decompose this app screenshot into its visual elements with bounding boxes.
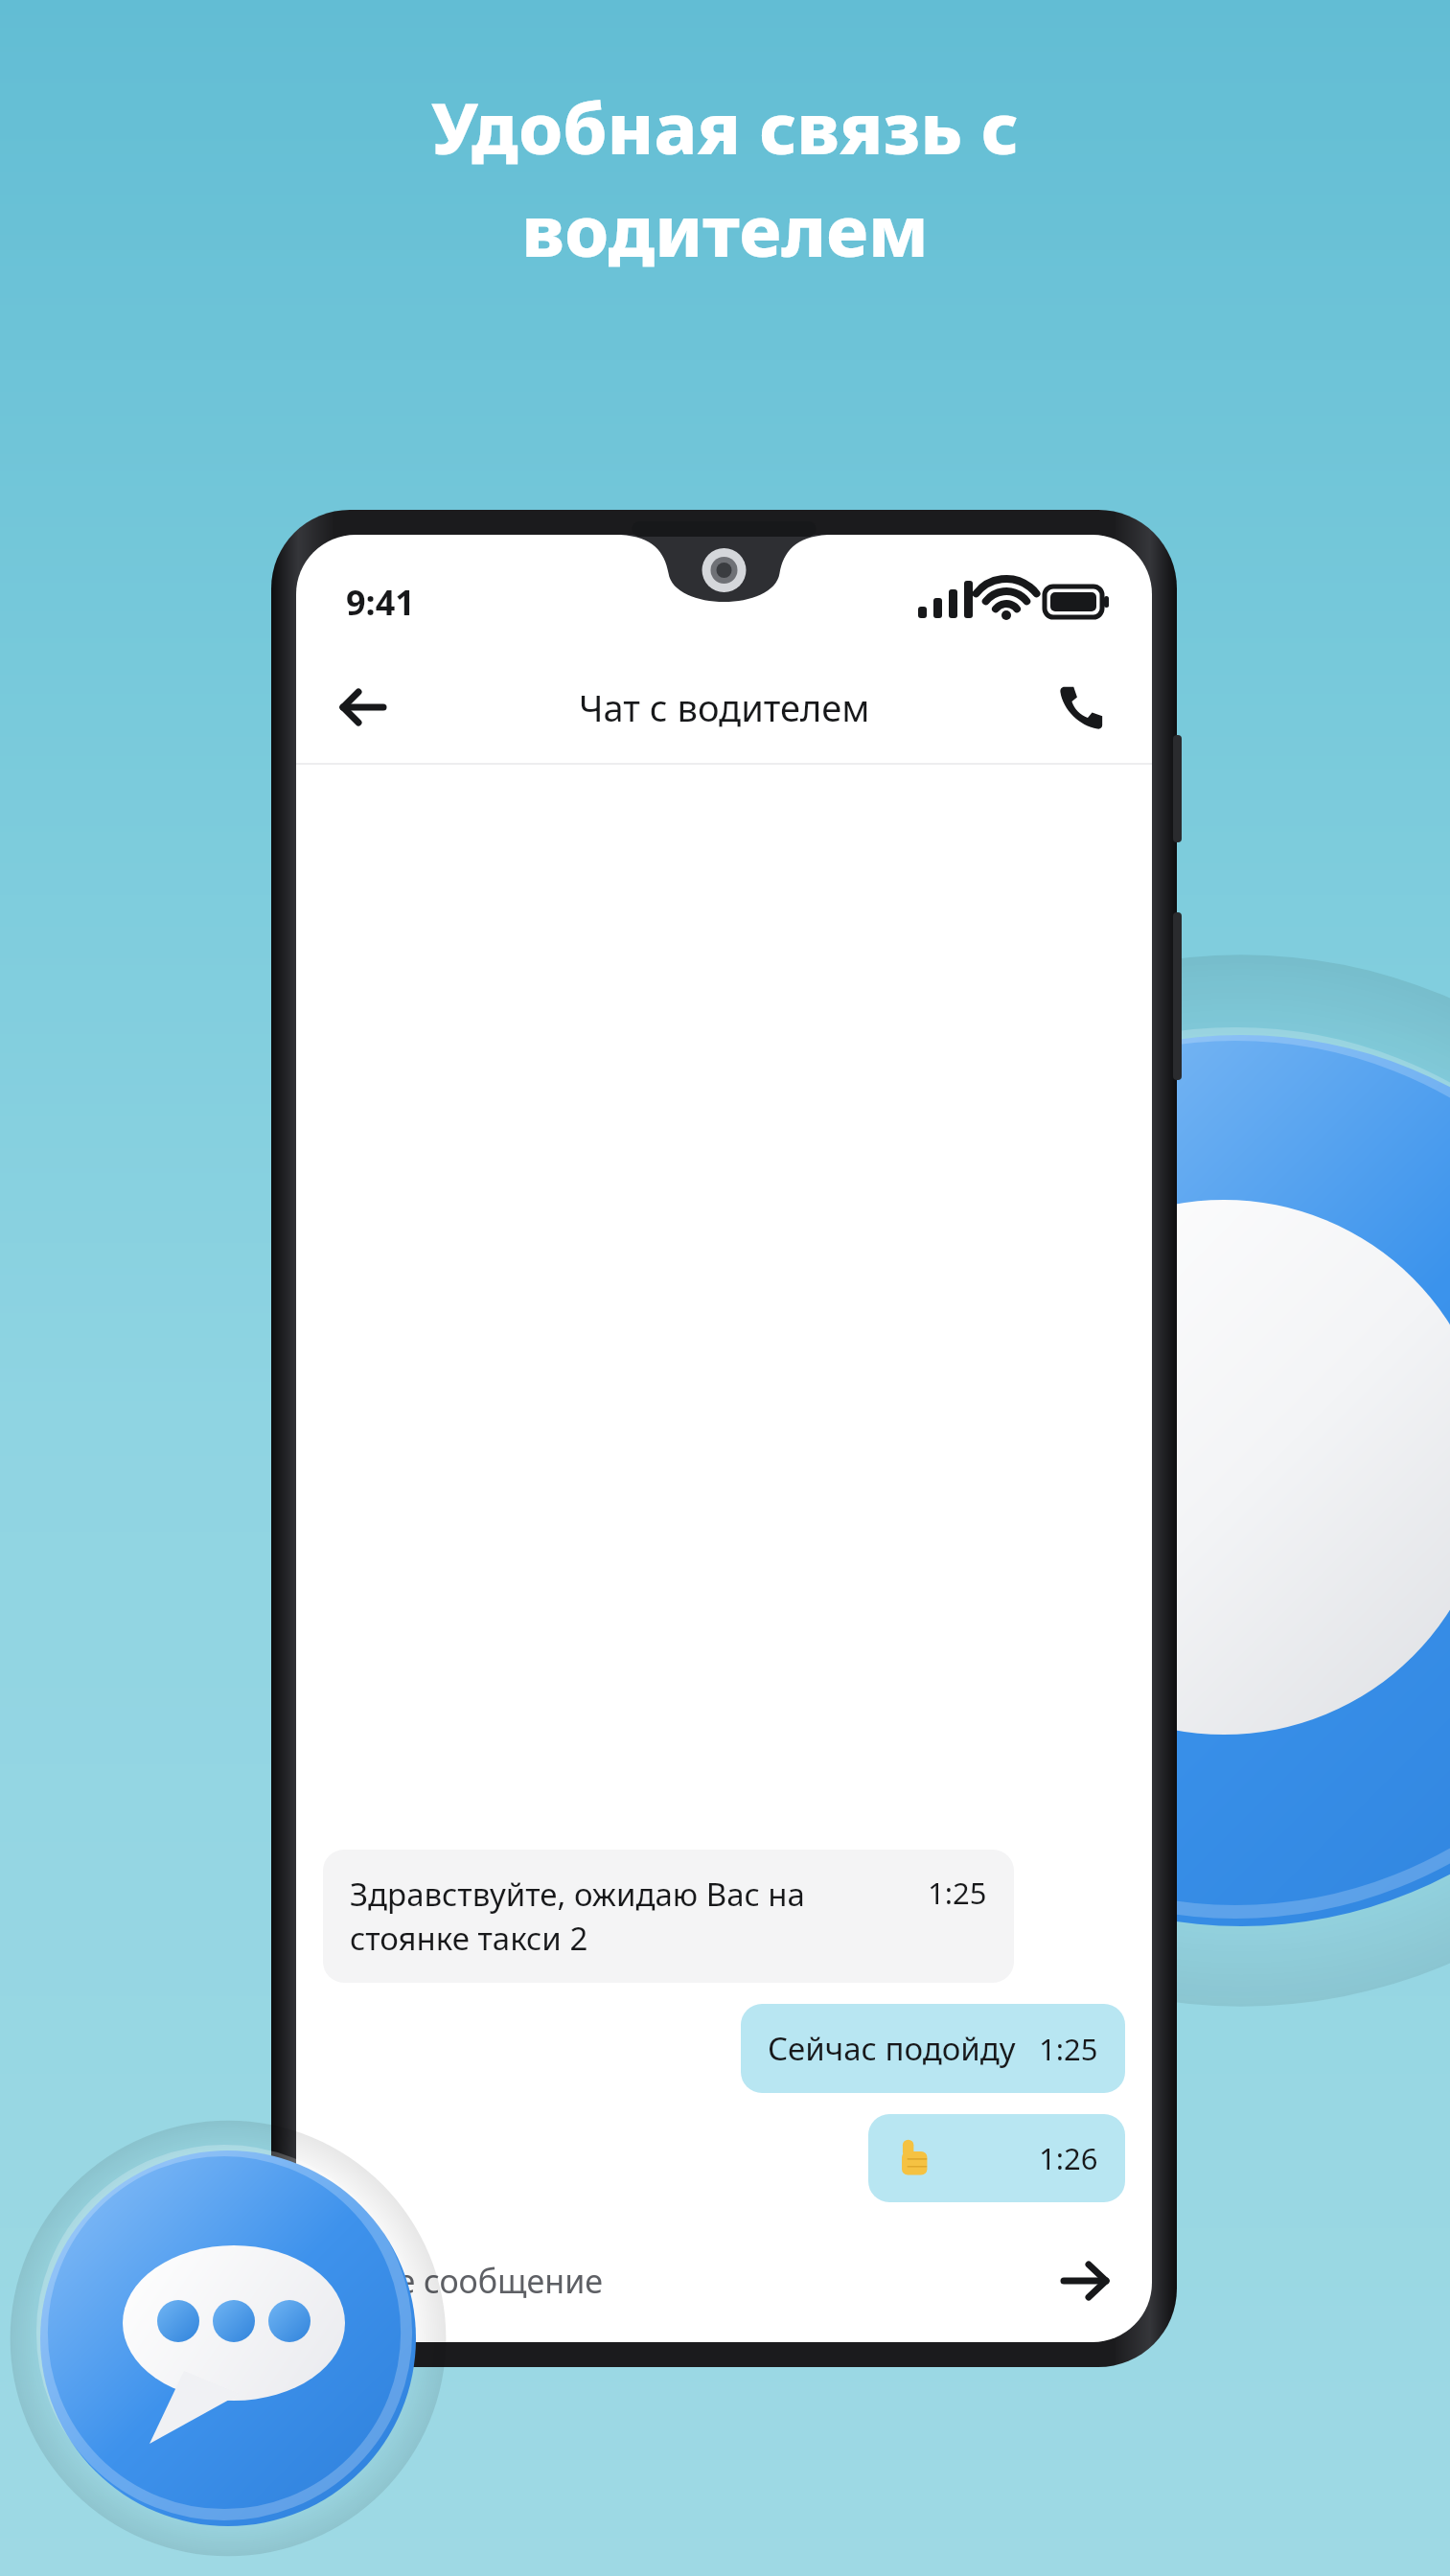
button[interactable]: 1:26 xyxy=(868,2114,1125,2202)
staticText: Сейчас подойду xyxy=(768,2027,1016,2070)
staticText: 1:26 xyxy=(1039,2138,1098,2178)
staticText: Чат с водителем xyxy=(579,682,870,732)
button[interactable]: Позвонить xyxy=(1041,666,1123,748)
staticText: Здравствуйте, ожидаю Вас на стоянке такс… xyxy=(350,1873,805,1960)
button[interactable]: Назад xyxy=(321,666,403,748)
staticText: 1:25 xyxy=(1039,2029,1098,2069)
staticText: 9:41 xyxy=(346,579,415,626)
button[interactable]: Здравствуйте, ожидаю Вас на стоянке такс… xyxy=(323,1850,1014,1983)
button[interactable]: Отправить xyxy=(1045,2240,1127,2322)
button[interactable]: Сейчас подойду xyxy=(741,2004,1125,2093)
staticText: Удобная связь с xyxy=(431,79,1019,175)
staticText: водителем xyxy=(521,181,929,278)
staticText: Ваше сообщение xyxy=(329,2259,604,2303)
staticText: 1:25 xyxy=(928,1873,987,1913)
